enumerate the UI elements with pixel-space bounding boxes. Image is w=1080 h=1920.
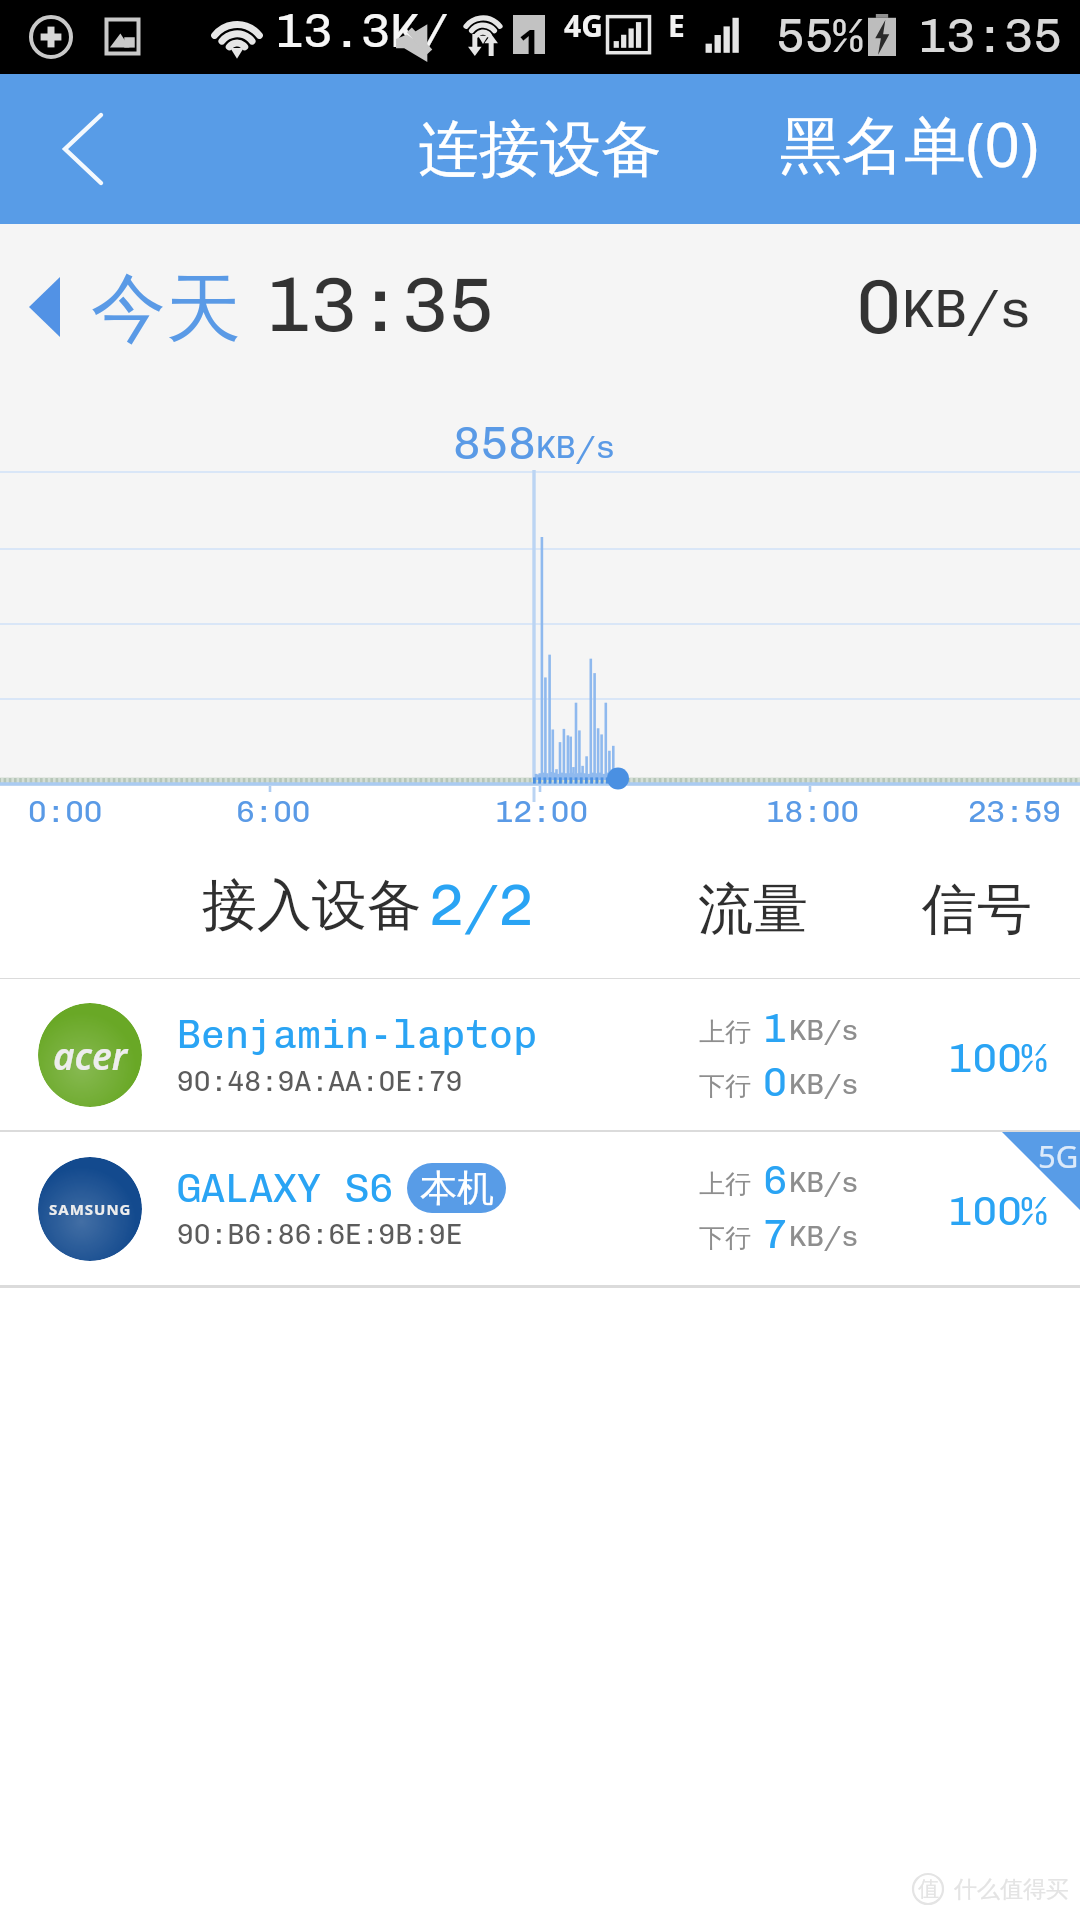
staticText: E: [668, 5, 685, 46]
staticText: 4G: [564, 5, 603, 46]
staticText: KB/s: [536, 427, 616, 466]
button[interactable]: Back: [0, 74, 180, 224]
staticText: 7: [763, 1210, 787, 1258]
staticText: 0: [763, 1058, 787, 1106]
staticText: 23:59: [968, 793, 1061, 830]
staticText: 今天: [91, 262, 241, 356]
staticText: 12:00: [495, 793, 588, 830]
staticText: KB/s: [789, 1013, 859, 1048]
staticText: 信号: [922, 875, 1032, 944]
staticText: GALAXY S6: [177, 1164, 393, 1212]
staticText: 5G: [1038, 1135, 1079, 1177]
staticText: 6:00: [236, 793, 311, 830]
staticText: 100%: [948, 1033, 1047, 1082]
staticText: 黑名单(0): [780, 101, 1039, 186]
staticText: 下行: [699, 1222, 751, 1255]
staticText: 13:35: [918, 7, 1063, 64]
staticText: Benjamin-laptop: [177, 1010, 537, 1058]
staticText: 下行: [699, 1070, 751, 1103]
staticText: 55%: [776, 7, 863, 64]
staticText: 接入设备: [202, 871, 422, 940]
staticText: 流量: [698, 875, 808, 944]
staticText: 90:B6:86:6E:9B:9E: [177, 1218, 463, 1251]
staticText: SAMSUNG: [49, 1199, 132, 1219]
staticText: 13.3K/: [275, 2, 448, 59]
staticText: acer: [53, 1030, 128, 1080]
staticText: 1: [763, 1004, 787, 1052]
staticText: KB/s: [789, 1067, 859, 1102]
button[interactable]: acer: [0, 979, 1080, 1132]
staticText: KB/s: [789, 1219, 859, 1254]
staticText: 2/2: [429, 870, 534, 939]
staticText: 上行: [699, 1168, 751, 1201]
button[interactable]: 5G: [0, 1132, 1080, 1287]
staticText: 本机: [420, 1165, 494, 1212]
staticText: 6: [763, 1156, 787, 1204]
staticText: 90:48:9A:AA:0E:79: [177, 1065, 463, 1098]
staticText: 连接设备: [418, 111, 662, 188]
staticText: 0: [856, 262, 902, 352]
button[interactable]: 黑名单(0): [760, 74, 1059, 224]
staticText: 13:35: [266, 260, 494, 350]
staticText: 什么值得买: [954, 1875, 1069, 1904]
staticText: 18:00: [766, 793, 859, 830]
staticText: 1: [518, 15, 541, 54]
staticText: KB/s: [902, 276, 1032, 340]
staticText: KB/s: [789, 1165, 859, 1200]
staticText: 0:00: [28, 793, 103, 830]
staticText: 值: [918, 1876, 939, 1902]
staticText: 858: [453, 416, 536, 471]
staticText: 上行: [699, 1016, 751, 1049]
staticText: 100%: [948, 1186, 1047, 1235]
button[interactable]: 今天: [19, 247, 255, 363]
